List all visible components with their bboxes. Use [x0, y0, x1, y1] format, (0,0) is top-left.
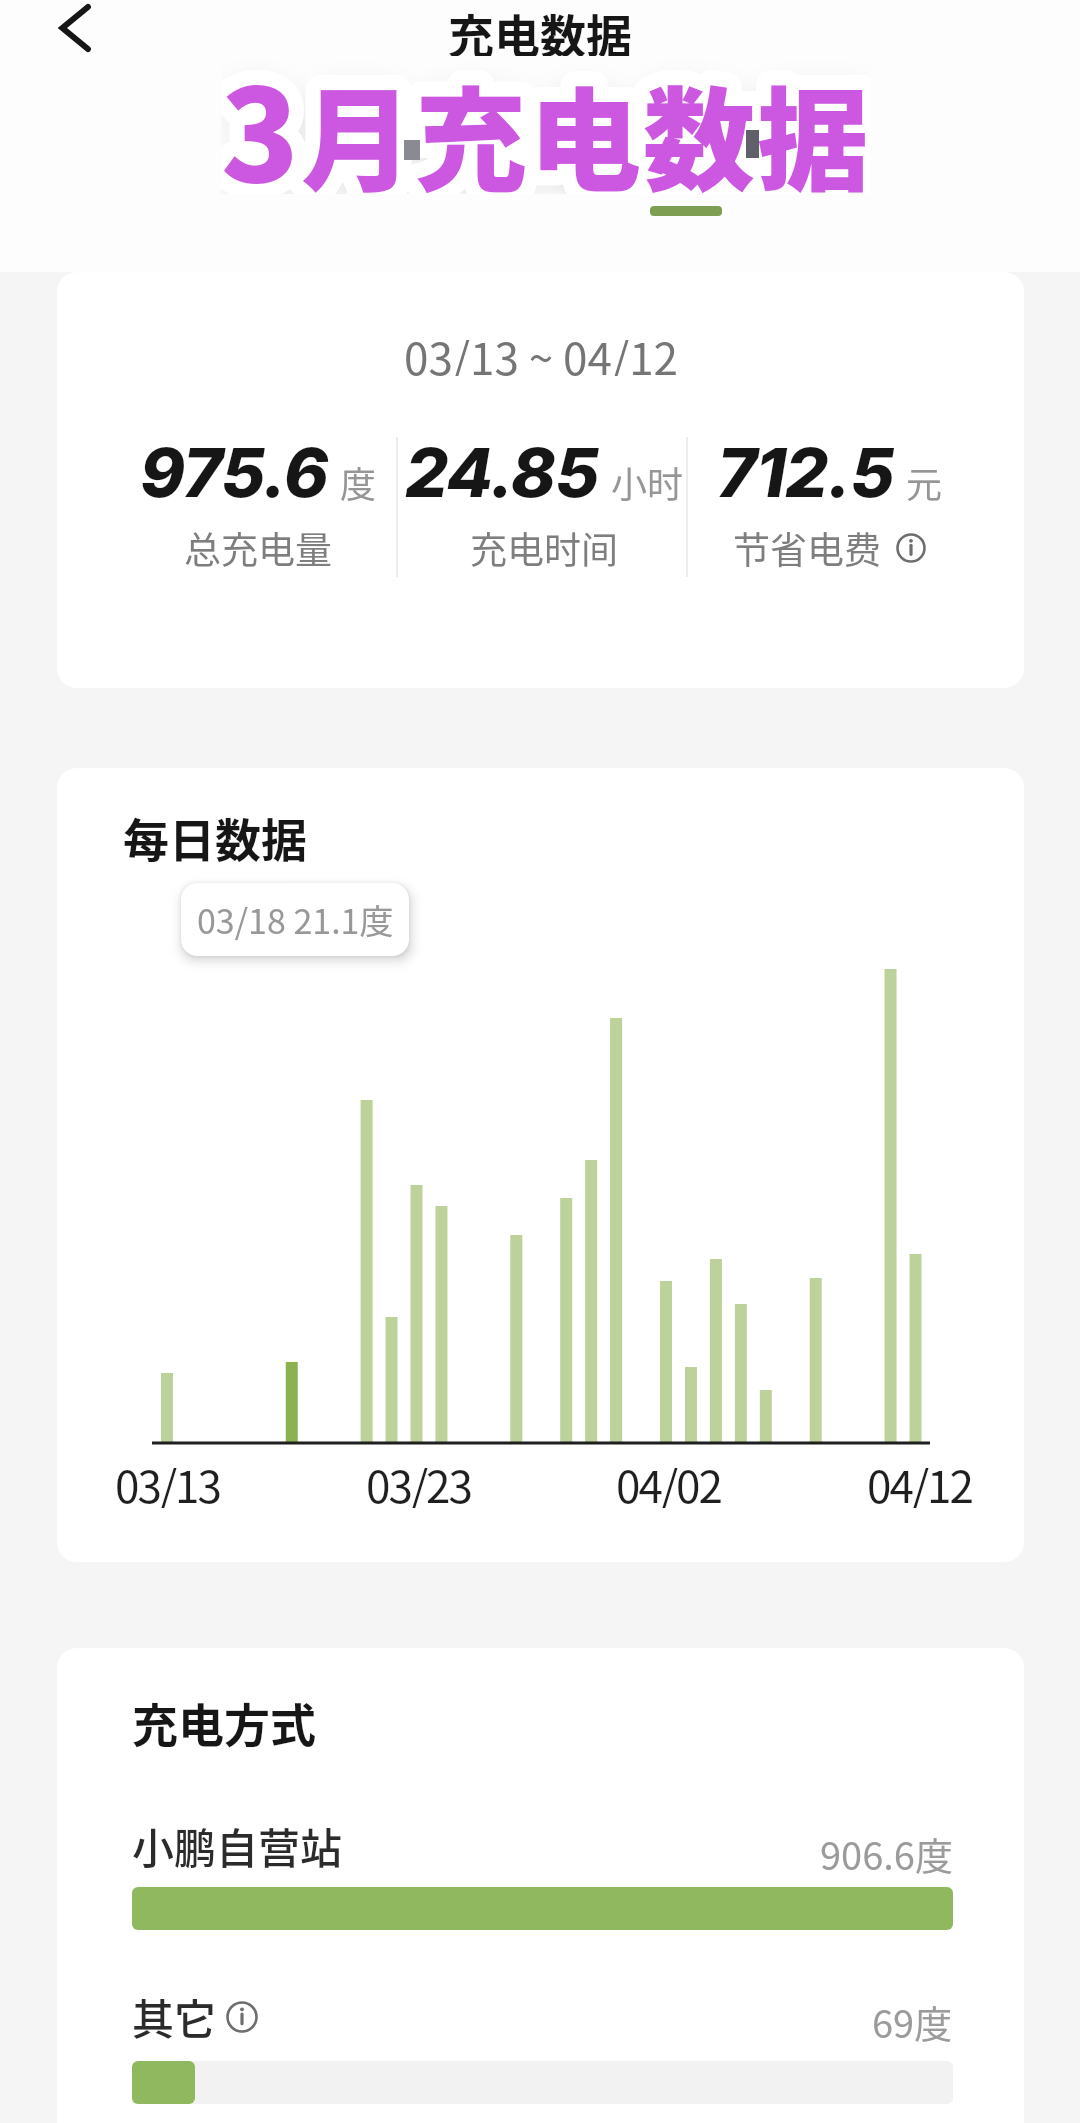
- staticText: 小时: [611, 456, 684, 508]
- staticText: 03/13: [115, 1452, 220, 1508]
- staticText: 24.85: [405, 431, 599, 513]
- staticText: 其它: [132, 1986, 217, 2047]
- button[interactable]: [44, 0, 108, 56]
- staticText: 03/23: [366, 1452, 471, 1508]
- staticText: 03/18 21.1度: [197, 895, 394, 944]
- staticText: 每日数据: [123, 804, 307, 871]
- staticText: 3月充电数据: [221, 34, 871, 194]
- staticText: 04/02: [616, 1452, 721, 1508]
- button[interactable]: [225, 2000, 259, 2034]
- staticText: 充电时间: [470, 521, 618, 575]
- staticText: 充电数据: [448, 0, 632, 56]
- button[interactable]: [895, 532, 927, 564]
- staticText: 总充电量: [184, 521, 332, 575]
- staticText: 712.5: [717, 431, 894, 513]
- staticText: 3月充电数据: [221, 34, 871, 194]
- staticText: 03/13 ~ 04/12: [404, 324, 678, 376]
- staticText: 69度: [872, 1994, 953, 2049]
- staticText: 小鹏自营站: [132, 1815, 343, 1876]
- staticText: 节省电费: [733, 521, 881, 575]
- staticText: 元: [906, 456, 943, 508]
- staticText: 975.6: [140, 431, 328, 513]
- staticText: 度: [340, 456, 377, 508]
- staticText: 充电方式: [132, 1689, 316, 1756]
- staticText: 906.6度: [820, 1826, 953, 1881]
- staticText: 04/12: [867, 1452, 972, 1508]
